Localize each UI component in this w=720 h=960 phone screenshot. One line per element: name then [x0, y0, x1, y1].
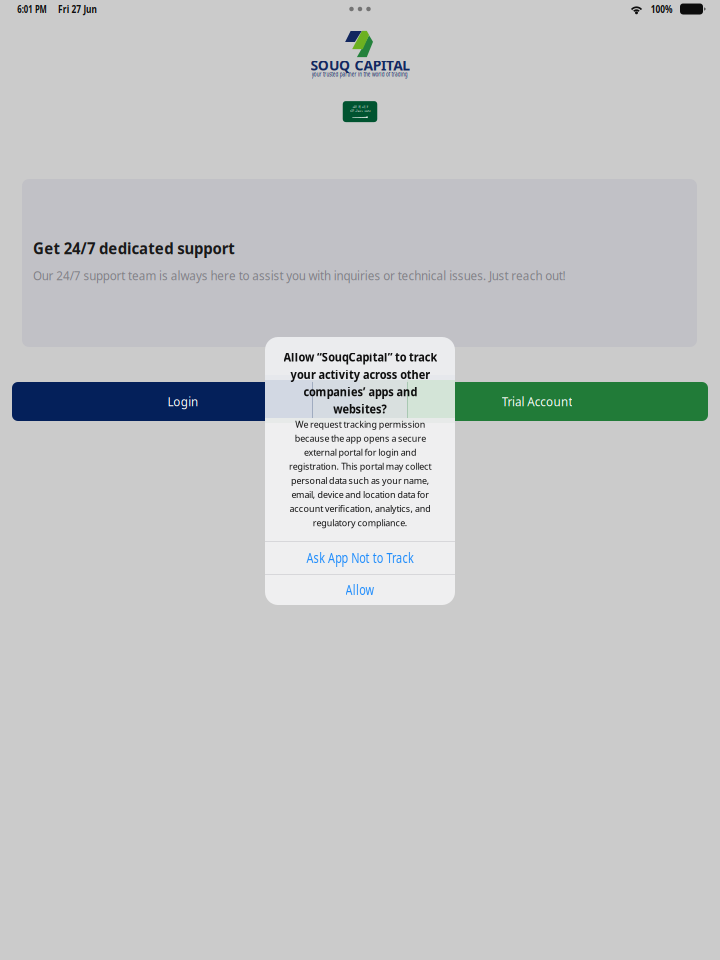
staticText: Fri 27 Jun: [53, 2, 102, 16]
staticText: 6:01 PM: [12, 2, 52, 16]
staticText: لا إله إلا الله: [345, 103, 375, 110]
staticText: Our 24/7 support team is always here to …: [33, 267, 582, 284]
staticText: Get 24/7 dedicated support: [33, 237, 250, 259]
staticText: Trial Account: [499, 393, 574, 410]
button[interactable]: Trial Account: [366, 382, 708, 421]
staticText: Allow “SouqCapital” to track your activi…: [277, 349, 442, 417]
staticText: Allow: [342, 580, 378, 599]
staticText: Login: [166, 393, 199, 410]
staticText: We request tracking permission because t…: [283, 417, 436, 529]
button[interactable]: Ask App Not to Track: [265, 542, 455, 574]
staticText: Ask App Not to Track: [293, 548, 427, 567]
button[interactable]: Allow: [265, 575, 455, 605]
staticText: 100%: [648, 2, 675, 16]
button[interactable]: Login: [12, 382, 354, 421]
staticText: your trusted partner in the world of tra…: [291, 70, 428, 78]
staticText: محمد رسول الله: [339, 107, 380, 113]
staticText: SOUQ CAPITAL: [311, 56, 409, 74]
